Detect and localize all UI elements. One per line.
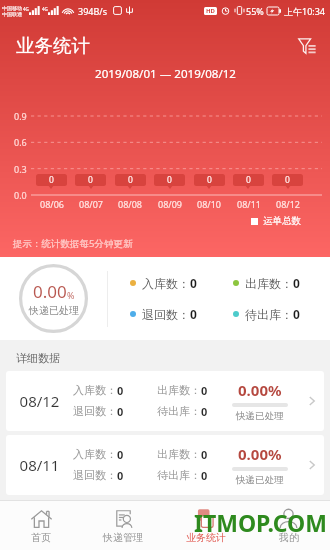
staticText: 首页 [31,531,51,544]
staticText: 待出库： [157,404,201,418]
staticText: 0 [201,404,208,419]
staticText: 我的 [279,531,299,544]
staticText: 出库数： [245,276,293,291]
staticText: 0 [117,447,124,462]
staticText: 业务统计 [186,531,226,544]
staticText: 出库数： [157,383,201,397]
staticText: 08/10 [197,198,221,210]
staticText: 0.9 [14,110,27,122]
staticText: 08/09 [158,198,182,210]
staticText: 入库数： [142,276,190,291]
button[interactable]: 业务统计 [164,501,247,550]
staticText: 详细数据 [16,351,60,364]
staticText: ITMOP.COM [194,507,327,538]
staticText: 0 [201,468,208,483]
button[interactable]: 首页 [0,501,82,550]
staticText: 中国联通 [2,11,22,17]
staticText: 上午10:34 [284,5,326,17]
staticText: 4G [42,6,48,12]
staticText: % [67,289,75,301]
staticText: 入库数： [73,447,117,461]
staticText: 0.3 [14,163,27,175]
staticText: 业务统计 [16,34,90,57]
staticText: 0 [285,174,290,186]
staticText: 08/07 [79,198,103,210]
button[interactable]: 快递管理 [82,501,164,550]
staticText: 中国移动 [2,5,22,11]
staticText: 0 [201,447,208,462]
staticText: 0 [128,174,133,186]
staticText: 出库数： [157,447,201,461]
staticText: 快递已处理 [29,304,79,317]
staticText: HD [206,7,215,15]
staticText: 0.0 [14,189,27,201]
staticText: 快递管理 [103,531,143,544]
button[interactable]: 08/12 [6,371,324,431]
staticText: 08/11 [6,455,73,475]
staticText: 快递已处理 [236,410,284,422]
staticText: 0 [190,275,197,291]
button[interactable]: 我的 [247,501,330,550]
staticText: 退回数： [142,307,190,322]
staticText: 0 [117,468,124,483]
staticText: 0 [117,404,124,419]
staticText: 4G [23,6,29,12]
button[interactable]: 08/11 [6,435,324,495]
staticText: 0 [207,174,212,186]
staticText: 0.00% [238,380,282,400]
staticText: 0 [190,306,197,322]
staticText: 0.00% [238,444,282,464]
staticText: 0 [201,383,208,398]
staticText: 08/11 [237,198,261,210]
staticText: 0 [167,174,172,186]
staticText: 394B/s [78,5,107,17]
staticText: 提示：统计数据每5分钟更新 [13,237,133,250]
staticText: 待出库： [157,468,201,482]
staticText: 08/12 [276,198,300,210]
staticText: 0 [246,174,251,186]
staticText: 08/06 [40,198,64,210]
staticText: 0.6 [14,136,27,148]
staticText: 0 [293,306,300,322]
button[interactable]: Filter [293,31,321,59]
staticText: 0 [293,275,300,291]
staticText: 55% [246,5,264,17]
staticText: 08/12 [6,391,73,411]
staticText: 0 [117,383,124,398]
staticText: 运单总数 [263,215,301,227]
staticText: 2019/08/01 — 2019/08/12 [95,66,236,82]
staticText: 08/08 [118,198,142,210]
staticText: 0.00 [33,280,67,303]
staticText: 待出库： [245,307,293,322]
staticText: 0 [88,174,93,186]
staticText: 0 [49,174,54,186]
staticText: 入库数： [73,383,117,397]
staticText: 退回数： [73,468,117,482]
staticText: 退回数： [73,404,117,418]
staticText: 快递已处理 [236,474,284,486]
